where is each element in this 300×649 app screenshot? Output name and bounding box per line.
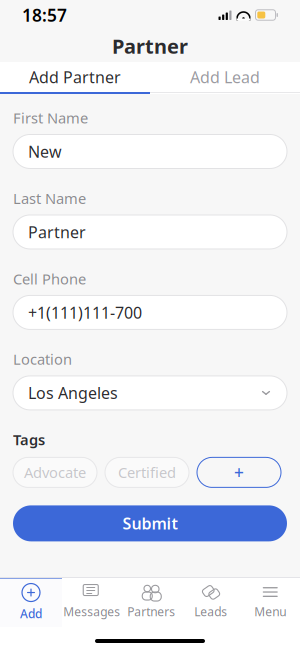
staticText: Messages	[63, 603, 120, 619]
staticText: Submit	[122, 513, 177, 534]
staticText: Certified	[118, 463, 176, 482]
staticText: Partner	[28, 221, 86, 242]
staticText: Add Partner	[29, 66, 121, 88]
button[interactable]: Leads	[181, 577, 240, 627]
staticText: Partner	[112, 33, 188, 59]
staticText: +	[234, 461, 244, 484]
staticText: Menu	[254, 603, 286, 619]
staticText: First Name	[13, 108, 88, 127]
button[interactable]: Certified	[105, 457, 189, 487]
button[interactable]: Partners	[121, 577, 181, 627]
staticText: Add Lead	[190, 66, 260, 88]
staticText: +1(111)111-700	[28, 302, 142, 323]
button[interactable]: Submit	[13, 505, 287, 541]
button[interactable]: Add	[0, 577, 62, 627]
button[interactable]: Menu	[240, 577, 300, 627]
staticText: 18:57	[22, 3, 67, 26]
button[interactable]: +1(111)111-700	[13, 295, 287, 329]
staticText: Tags	[13, 430, 45, 449]
button[interactable]: Messages	[62, 577, 121, 627]
staticText: Leads	[194, 603, 227, 619]
staticText: Location	[13, 349, 72, 369]
staticText: New	[28, 141, 62, 162]
staticText: Last Name	[13, 188, 86, 208]
staticText: Cell Phone	[13, 269, 86, 288]
staticText: Partners	[127, 603, 175, 619]
button[interactable]: Los Angeles	[13, 376, 287, 410]
button[interactable]: New	[13, 134, 287, 168]
button[interactable]: Add tag	[197, 457, 281, 487]
button[interactable]: Partner	[13, 215, 287, 249]
staticText: Los Angeles	[28, 382, 118, 403]
staticText: Advocate	[24, 463, 86, 482]
button[interactable]: Add Lead	[150, 62, 300, 92]
staticText: Add	[20, 605, 42, 621]
button[interactable]: Add Partner	[0, 62, 150, 92]
button[interactable]: Advocate	[13, 457, 97, 487]
